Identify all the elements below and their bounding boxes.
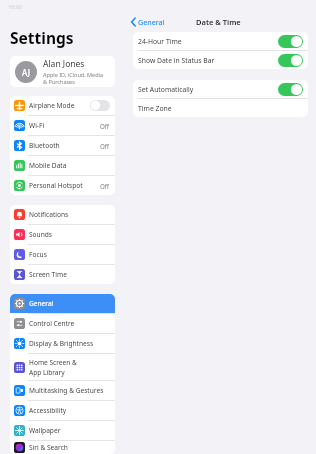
staticText: & Purchases: [43, 78, 75, 85]
staticText: Mobile Data: [29, 161, 67, 170]
staticText: Control Centre: [29, 319, 75, 328]
button[interactable]: Time Zone: [133, 99, 308, 117]
button[interactable]: Focus: [10, 245, 115, 264]
button[interactable]: Bluetooth: [10, 136, 115, 155]
staticText: Off: [100, 182, 110, 190]
staticText: Siri & Search: [29, 443, 68, 452]
staticText: General: [29, 299, 54, 308]
staticText: General: [138, 17, 165, 27]
staticText: Wallpaper: [29, 426, 61, 435]
staticText: App Library: [29, 368, 65, 377]
button[interactable]: 24-Hour Time: [133, 32, 308, 50]
staticText: Personal Hotspot: [29, 181, 83, 190]
staticText: Apple ID, iCloud, Media: [43, 71, 104, 78]
staticText: Alan Jones: [43, 58, 85, 70]
staticText: AJ: [22, 67, 30, 78]
button[interactable]: General: [10, 294, 115, 313]
staticText: Show Date in Status Bar: [138, 56, 278, 65]
staticText: Set Automatically: [138, 85, 278, 94]
button[interactable]: Personal Hotspot: [10, 176, 115, 195]
staticText: Notifications: [29, 210, 69, 219]
staticText: Wi-Fi: [29, 121, 45, 130]
button[interactable]: Home Screen &: [10, 354, 115, 380]
button[interactable]: Multitasking & Gestures: [10, 381, 115, 400]
button[interactable]: Show Date in Status Bar: [133, 51, 308, 69]
button[interactable]: Screen Time: [10, 265, 115, 284]
button[interactable]: Control Centre: [10, 314, 115, 333]
button[interactable]: Notifications: [10, 205, 115, 224]
staticText: Screen Time: [29, 270, 67, 279]
staticText: Focus: [29, 250, 47, 259]
staticText: Off: [100, 142, 110, 150]
button[interactable]: Display & Brightness: [10, 334, 115, 353]
button[interactable]: Set Automatically: [133, 80, 308, 98]
staticText: 10:00: [8, 3, 23, 10]
button[interactable]: AJ: [10, 56, 115, 87]
staticText: Accessibility: [29, 406, 67, 415]
button[interactable]: Siri & Search: [10, 441, 115, 454]
staticText: Home Screen &: [29, 358, 77, 367]
staticText: Display & Brightness: [29, 339, 94, 348]
button[interactable]: Sounds: [10, 225, 115, 244]
staticText: 24-Hour Time: [138, 37, 278, 46]
button[interactable]: Airplane Mode: [10, 96, 115, 115]
staticText: Sounds: [29, 230, 52, 239]
button[interactable]: General: [125, 15, 169, 29]
staticText: Bluetooth: [29, 141, 60, 150]
staticText: Off: [100, 122, 110, 130]
staticText: Multitasking & Gestures: [29, 386, 104, 395]
button[interactable]: Wi-Fi: [10, 116, 115, 135]
button[interactable]: Wallpaper: [10, 421, 115, 440]
staticText: Date & Time: [196, 17, 241, 27]
button[interactable]: Accessibility: [10, 401, 115, 420]
staticText: Settings: [10, 27, 74, 48]
staticText: Time Zone: [138, 104, 303, 113]
staticText: Airplane Mode: [29, 101, 75, 110]
button[interactable]: Mobile Data: [10, 156, 115, 175]
